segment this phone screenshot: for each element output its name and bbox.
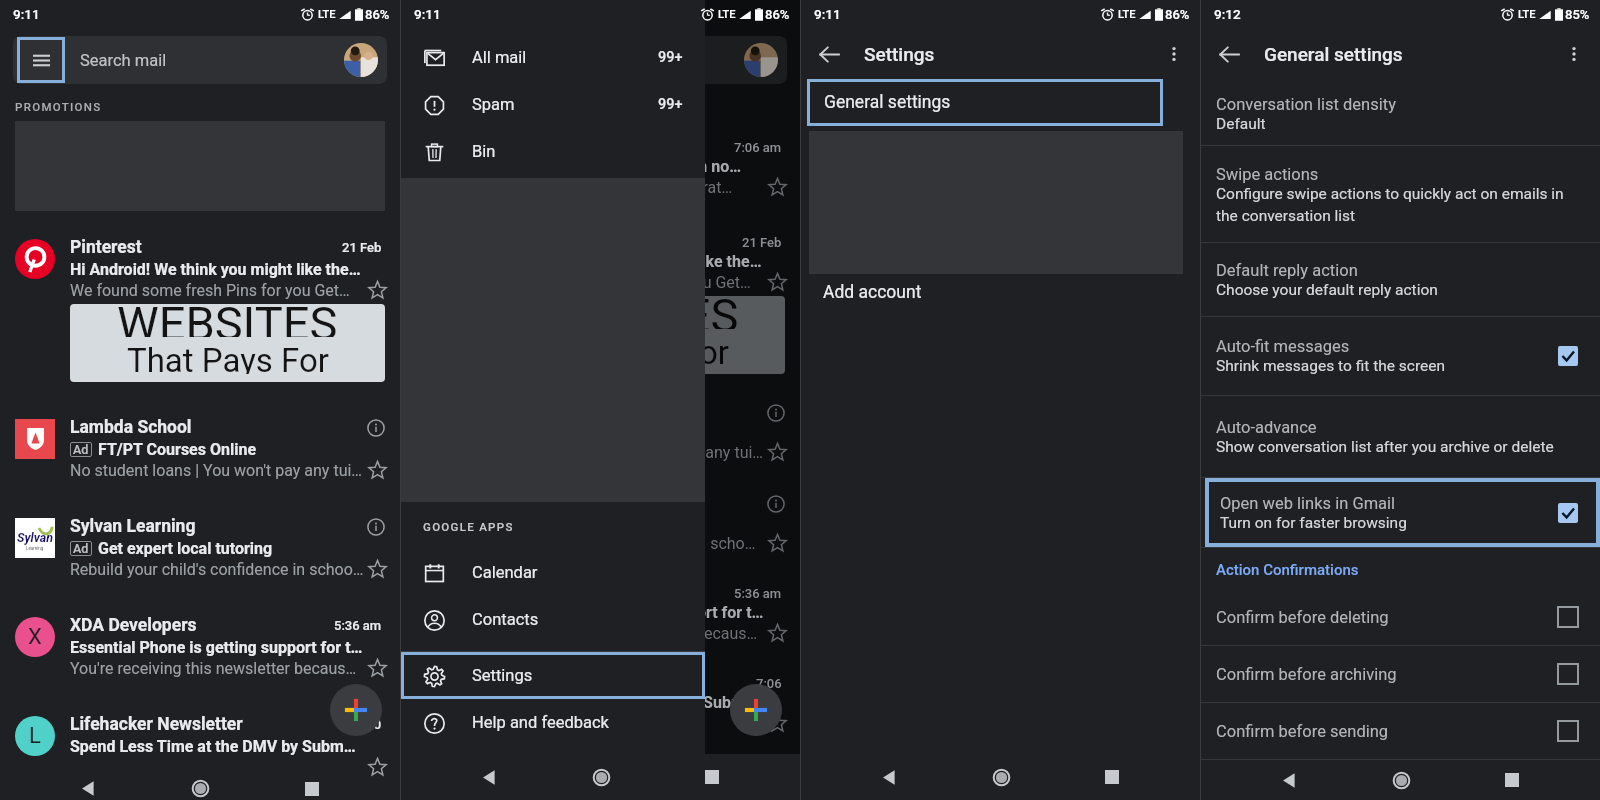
button[interactable]: X xyxy=(0,615,400,678)
staticText: 21 Feb xyxy=(342,240,382,255)
button[interactable]: Star xyxy=(368,560,387,579)
button[interactable]: Back xyxy=(1209,34,1249,74)
staticText: Confirm before deleting xyxy=(1216,608,1389,627)
staticText: FT/PT Courses Online xyxy=(98,440,257,459)
button[interactable]: Recents xyxy=(1492,760,1532,800)
button[interactable]: Help and feedback xyxy=(401,699,705,746)
staticText: 86% xyxy=(765,7,790,22)
staticText: That Pays For xyxy=(127,341,329,374)
button[interactable]: Home xyxy=(581,757,621,797)
staticText: General settings xyxy=(824,92,951,113)
button[interactable]: Star xyxy=(368,758,387,777)
staticText: Spam xyxy=(472,95,515,114)
staticText: 99+ xyxy=(658,49,683,66)
button[interactable]: Star xyxy=(368,281,387,300)
staticText: Configure swipe actions to quickly act o… xyxy=(1216,185,1578,224)
button[interactable]: Home xyxy=(1381,760,1421,800)
button[interactable]: Add account xyxy=(801,278,922,303)
button[interactable]: Home xyxy=(180,777,220,800)
staticText: Default xyxy=(1216,115,1266,133)
staticText: We found some fresh Pins for you Get… xyxy=(471,273,764,292)
staticText: General settings xyxy=(1264,43,1403,65)
staticText: Settings xyxy=(472,666,533,685)
staticText: XDA Developers xyxy=(70,615,197,636)
button[interactable]: Calendar xyxy=(401,549,705,596)
button[interactable]: Open web links in Gmail xyxy=(1205,478,1600,547)
staticText: Spend Less Time at the DMV by Subm… xyxy=(70,737,390,756)
button[interactable]: Account xyxy=(344,43,378,77)
staticText: Auto-advance xyxy=(1216,418,1317,437)
staticText: No student loans | You won't pay any tui… xyxy=(70,461,364,480)
button[interactable]: Recents xyxy=(1092,757,1132,797)
staticText: All mail xyxy=(472,48,527,67)
staticText: Sylvan Learning xyxy=(70,516,367,537)
button[interactable]: Back xyxy=(1269,760,1309,800)
button[interactable]: Auto-fit messages xyxy=(1201,317,1600,395)
button[interactable]: Contacts xyxy=(401,596,705,643)
staticText: 21 Feb xyxy=(742,235,782,250)
button[interactable]: Back xyxy=(809,34,849,74)
staticText: 86% xyxy=(365,7,390,22)
button[interactable]: Confirm before deleting xyxy=(1201,589,1600,645)
button[interactable]: More options xyxy=(1154,34,1194,74)
button[interactable]: Back xyxy=(68,777,108,800)
button[interactable]: L xyxy=(0,714,400,777)
staticText: Ad xyxy=(73,442,89,457)
button[interactable]: Compose xyxy=(330,684,382,736)
button[interactable]: All mail xyxy=(401,34,705,81)
staticText: 7:06 am xyxy=(734,140,782,155)
button[interactable]: Compose xyxy=(730,684,782,736)
staticText: Some minor bugfixes and accelerat… xyxy=(471,178,764,197)
button[interactable]: Settings xyxy=(401,652,705,699)
staticText: Calendar xyxy=(472,563,538,582)
button[interactable]: Home xyxy=(981,757,1021,797)
button[interactable]: Confirm before sending xyxy=(1201,703,1600,759)
staticText: 85% xyxy=(1565,7,1590,22)
button[interactable]: Star xyxy=(368,461,387,480)
button[interactable]: Lambda School xyxy=(0,417,400,480)
staticText: Settings xyxy=(864,43,935,65)
staticText xyxy=(471,714,764,733)
button[interactable]: Swipe actions xyxy=(1201,146,1600,242)
staticText: Lifehacker Newsletter xyxy=(70,714,243,735)
button[interactable]: General settings xyxy=(807,79,1163,126)
staticText: 9:11 xyxy=(13,6,40,22)
button[interactable]: Ad info xyxy=(367,518,385,536)
button[interactable]: Confirm before archiving xyxy=(1201,646,1600,702)
staticText: Contacts xyxy=(472,610,539,629)
staticText: Open web links in Gmail xyxy=(1220,494,1396,513)
button[interactable]: Bin xyxy=(401,128,705,175)
button[interactable]: Sylvan xyxy=(0,516,400,579)
staticText: Turn on for faster browsing xyxy=(1220,514,1407,532)
staticText: Bin xyxy=(472,142,496,161)
button[interactable]: More options xyxy=(1554,34,1594,74)
staticText: 7:06 xyxy=(756,676,782,691)
staticText: Confirm before sending xyxy=(1216,722,1389,741)
button[interactable]: Open navigation drawer xyxy=(17,37,65,83)
button[interactable]: Back xyxy=(469,757,509,797)
button[interactable]: Auto-advance xyxy=(1201,396,1600,477)
staticText: Auto-fit messages xyxy=(1216,337,1350,356)
staticText: Conversation list density xyxy=(1216,95,1396,114)
staticText: LTE xyxy=(718,8,736,21)
staticText: 5:36 am xyxy=(734,586,782,601)
staticText: 9:11 xyxy=(814,6,841,22)
button[interactable]: Ad info xyxy=(367,419,385,437)
button[interactable]: Conversation list density xyxy=(1201,82,1600,145)
button[interactable]: Recents xyxy=(692,757,732,797)
staticText: Default reply action xyxy=(1216,261,1358,280)
staticText: PROMOTIONS xyxy=(15,100,102,113)
staticText: Essential Phone is getting support for t… xyxy=(70,638,390,657)
staticText: 9:12 xyxy=(1214,6,1241,22)
button[interactable]: Star xyxy=(368,659,387,678)
staticText: 86% xyxy=(1165,7,1190,22)
button[interactable]: Recents xyxy=(292,777,332,800)
button[interactable]: Default reply action xyxy=(1201,243,1600,316)
staticText: Lambda School xyxy=(70,417,367,438)
staticText: Rebuild your child's confidence in schoo… xyxy=(471,534,764,553)
staticText: Get expert local tutoring xyxy=(98,539,273,558)
staticText: Shrink messages to fit the screen xyxy=(1216,357,1446,375)
button[interactable]: Pinterest xyxy=(0,237,400,382)
button[interactable]: Spam xyxy=(401,81,705,128)
button[interactable]: Back xyxy=(869,757,909,797)
